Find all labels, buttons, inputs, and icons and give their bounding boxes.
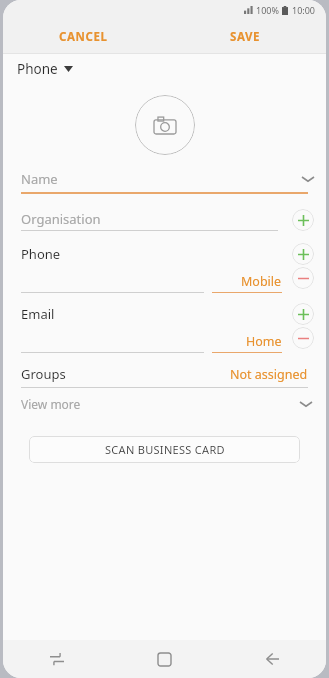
button[interactable]: Phone xyxy=(3,54,326,84)
staticText: Not assigned xyxy=(230,366,308,383)
staticText: Home xyxy=(246,333,282,350)
button[interactable]: Home xyxy=(110,640,218,678)
staticText: Organisation xyxy=(21,210,101,228)
button[interactable]: Recents xyxy=(3,640,110,678)
button[interactable]: Back xyxy=(218,640,326,678)
staticText: Name xyxy=(21,170,302,188)
button[interactable]: SCAN BUSINESS CARD xyxy=(29,436,300,463)
staticText: SCAN BUSINESS CARD xyxy=(105,442,225,457)
staticText: View more xyxy=(21,396,300,412)
staticText: SAVE xyxy=(230,29,261,45)
button[interactable]: Groups xyxy=(21,361,308,388)
button[interactable]: Add photo xyxy=(135,95,195,155)
button[interactable]: Home xyxy=(212,330,282,353)
staticText: CANCEL xyxy=(59,29,108,45)
button[interactable]: CANCEL xyxy=(3,29,164,45)
staticText: Mobile xyxy=(241,273,282,290)
staticText: Email xyxy=(21,305,292,323)
button[interactable]: Mobile xyxy=(212,270,282,293)
button[interactable] xyxy=(21,330,204,353)
button[interactable]: Add email address xyxy=(292,303,314,325)
button[interactable]: Organisation xyxy=(21,208,278,231)
button[interactable]: Add organisation xyxy=(292,209,314,231)
button[interactable]: SAVE xyxy=(164,29,326,45)
staticText: Groups xyxy=(21,365,230,383)
button[interactable]: Name xyxy=(3,166,326,194)
staticText: Phone xyxy=(17,60,58,78)
button[interactable] xyxy=(21,270,204,293)
staticText: 100% xyxy=(256,4,279,16)
button[interactable]: Remove phone number xyxy=(292,267,314,289)
button[interactable]: Remove email address xyxy=(292,327,314,349)
button[interactable]: View more xyxy=(3,388,326,420)
staticText: 10:00 xyxy=(292,4,316,16)
button[interactable]: Add phone number xyxy=(292,243,314,265)
staticText: Phone xyxy=(21,245,292,263)
